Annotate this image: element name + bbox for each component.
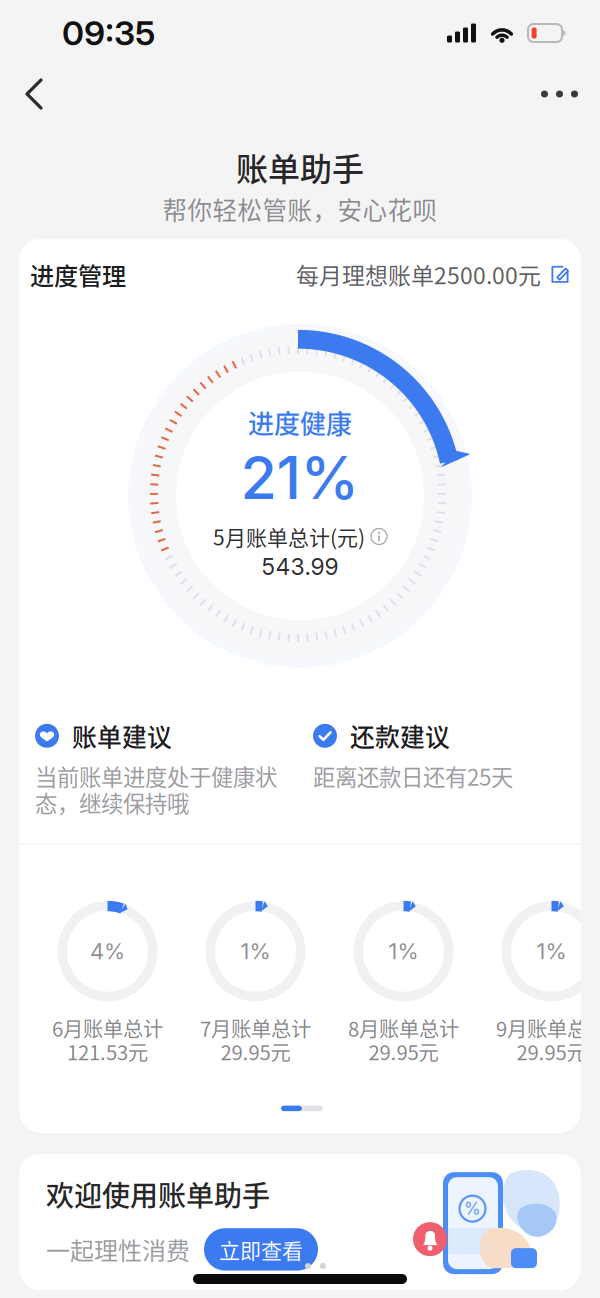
staticText: 6月账单总计: [52, 1013, 163, 1043]
button[interactable]: More options: [519, 71, 600, 116]
staticText: 还款建议: [350, 718, 450, 754]
staticText: 账单助手: [236, 144, 364, 190]
staticText: 7月账单总计: [200, 1013, 311, 1043]
button[interactable]: Back: [0, 66, 64, 122]
staticText: 09:35: [62, 12, 155, 53]
staticText: 29.95元: [220, 1037, 290, 1066]
button[interactable]: 每月理想账单2500.00元: [296, 258, 570, 291]
staticText: 1%: [536, 938, 566, 964]
staticText: 当前账单进度处于健康状态，继续保持哦: [35, 760, 277, 819]
staticText: 进度健康: [248, 403, 352, 441]
staticText: 每月理想账单2500.00元: [296, 258, 541, 291]
staticText: 8月账单总计: [348, 1013, 459, 1043]
staticText: 账单建议: [72, 718, 172, 754]
staticText: 121.53元: [67, 1037, 148, 1066]
staticText: 5月账单总计(元): [213, 521, 365, 552]
staticText: 29.95元: [516, 1037, 586, 1066]
staticText: %: [464, 1198, 481, 1219]
button[interactable]: 欢迎使用账单助手: [19, 1154, 581, 1290]
staticText: 4%: [90, 938, 125, 964]
staticText: 进度管理: [30, 257, 126, 292]
staticText: 1%: [388, 938, 418, 964]
staticText: 帮你轻松管账，安心花呗: [162, 191, 437, 227]
staticText: 543.99: [261, 553, 338, 580]
staticText: 1%: [240, 938, 270, 964]
staticText: 9月账单总计: [496, 1013, 600, 1043]
staticText: 一起理性消费: [46, 1232, 190, 1267]
staticText: 21%: [240, 442, 359, 513]
staticText: 欢迎使用账单助手: [46, 1174, 270, 1214]
staticText: 立即查看: [219, 1234, 303, 1265]
staticText: 29.95元: [368, 1037, 438, 1066]
staticText: 距离还款日还有25天: [313, 760, 513, 792]
